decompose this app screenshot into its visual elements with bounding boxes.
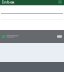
staticText: Inbox xyxy=(2,0,14,5)
